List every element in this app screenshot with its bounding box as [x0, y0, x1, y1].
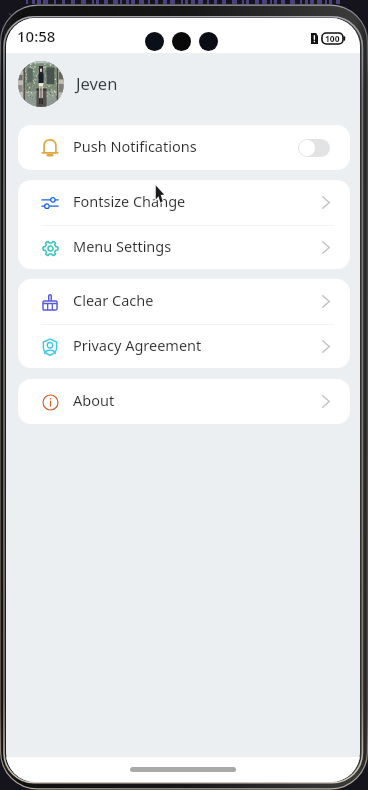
staticText: Privacy Agreement — [73, 335, 202, 355]
staticText: Menu Settings — [73, 236, 172, 256]
button[interactable]: Privacy Agreement — [18, 325, 350, 368]
button[interactable]: Fontsize Change — [18, 180, 350, 225]
staticText: Fontsize Change — [73, 191, 186, 211]
staticText: Push Notifications — [73, 136, 197, 156]
button[interactable]: Push notifications toggle — [298, 139, 330, 157]
button[interactable]: Menu Settings — [18, 226, 350, 269]
staticText: Jeven — [76, 72, 118, 94]
button[interactable]: About — [18, 379, 350, 424]
staticText: Clear Cache — [73, 290, 154, 310]
button[interactable]: Jeven — [6, 60, 360, 107]
staticText: About — [73, 390, 115, 410]
button[interactable]: Clear Cache — [18, 279, 350, 324]
staticText: 100 — [325, 33, 340, 44]
button[interactable]: Push Notifications — [18, 125, 350, 170]
staticText: 10:58 — [17, 26, 56, 46]
